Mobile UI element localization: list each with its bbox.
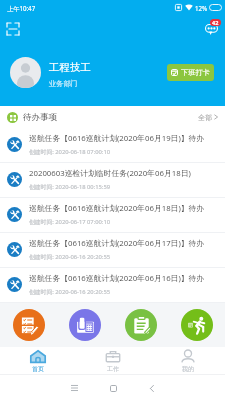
staticText: 12% xyxy=(195,4,208,12)
staticText: 巡航任务【0616巡航计划(2020年06月17日)】待办 xyxy=(29,238,205,249)
button[interactable]: Messages xyxy=(199,19,221,36)
staticText: 业务部门 xyxy=(49,79,78,88)
button[interactable]: Home xyxy=(103,377,123,399)
staticText: 首页 xyxy=(32,365,44,372)
button[interactable]: 我的 xyxy=(150,347,225,374)
button[interactable]: 巡航任务【0616巡航计划(2020年06月19日)】待办 xyxy=(0,128,225,162)
staticText: 工作 xyxy=(107,365,119,372)
button[interactable]: Tasks xyxy=(125,309,157,341)
button[interactable]: Recents xyxy=(64,377,84,399)
button[interactable]: Patrol xyxy=(181,309,213,341)
staticText: 待办事项 xyxy=(23,112,57,123)
button[interactable]: Devices xyxy=(69,309,101,341)
staticText: 创建时间: 2020-06-18 00:15:59 xyxy=(29,183,111,191)
button[interactable]: 首页 xyxy=(0,347,75,374)
staticText: 我的 xyxy=(182,365,194,372)
staticText: 上午10:47 xyxy=(7,4,36,12)
button[interactable]: 巡航任务【0616巡航计划(2020年06月16日)】待办 xyxy=(0,268,225,302)
staticText: 工程技工 xyxy=(49,61,91,74)
button[interactable]: Scan xyxy=(3,19,22,38)
staticText: 全部 xyxy=(198,113,212,122)
button[interactable]: 下班打卡 xyxy=(167,64,214,81)
button[interactable]: 巡航任务【0616巡航计划(2020年06月18日)】待办 xyxy=(0,198,225,232)
button[interactable]: Reports xyxy=(13,309,45,341)
staticText: 巡航任务【0616巡航计划(2020年06月18日)】待办 xyxy=(29,203,205,214)
staticText: 巡航任务【0616巡航计划(2020年06月19日)】待办 xyxy=(29,133,205,144)
staticText: 20200603巡检计划临时任务(2020年06月18日) xyxy=(29,168,191,179)
staticText: 巡航任务【0616巡航计划(2020年06月16日)】待办 xyxy=(29,273,205,284)
button[interactable]: 工作 xyxy=(75,347,150,374)
button[interactable]: 巡航任务【0616巡航计划(2020年06月17日)】待办 xyxy=(0,233,225,267)
button[interactable]: 待办事项 xyxy=(7,106,218,128)
staticText: 创建时间: 2020-06-16 20:20:55 xyxy=(29,288,111,296)
staticText: 下班打卡 xyxy=(181,68,210,77)
staticText: 创建时间: 2020-06-17 07:00:10 xyxy=(29,218,111,226)
staticText: 创建时间: 2020-06-18 07:00:10 xyxy=(29,148,111,156)
button[interactable]: 20200603巡检计划临时任务(2020年06月18日) xyxy=(0,163,225,197)
staticText: 创建时间: 2020-06-16 20:20:55 xyxy=(29,253,111,261)
button[interactable]: Back xyxy=(142,377,162,399)
staticText: 42 xyxy=(212,19,219,26)
